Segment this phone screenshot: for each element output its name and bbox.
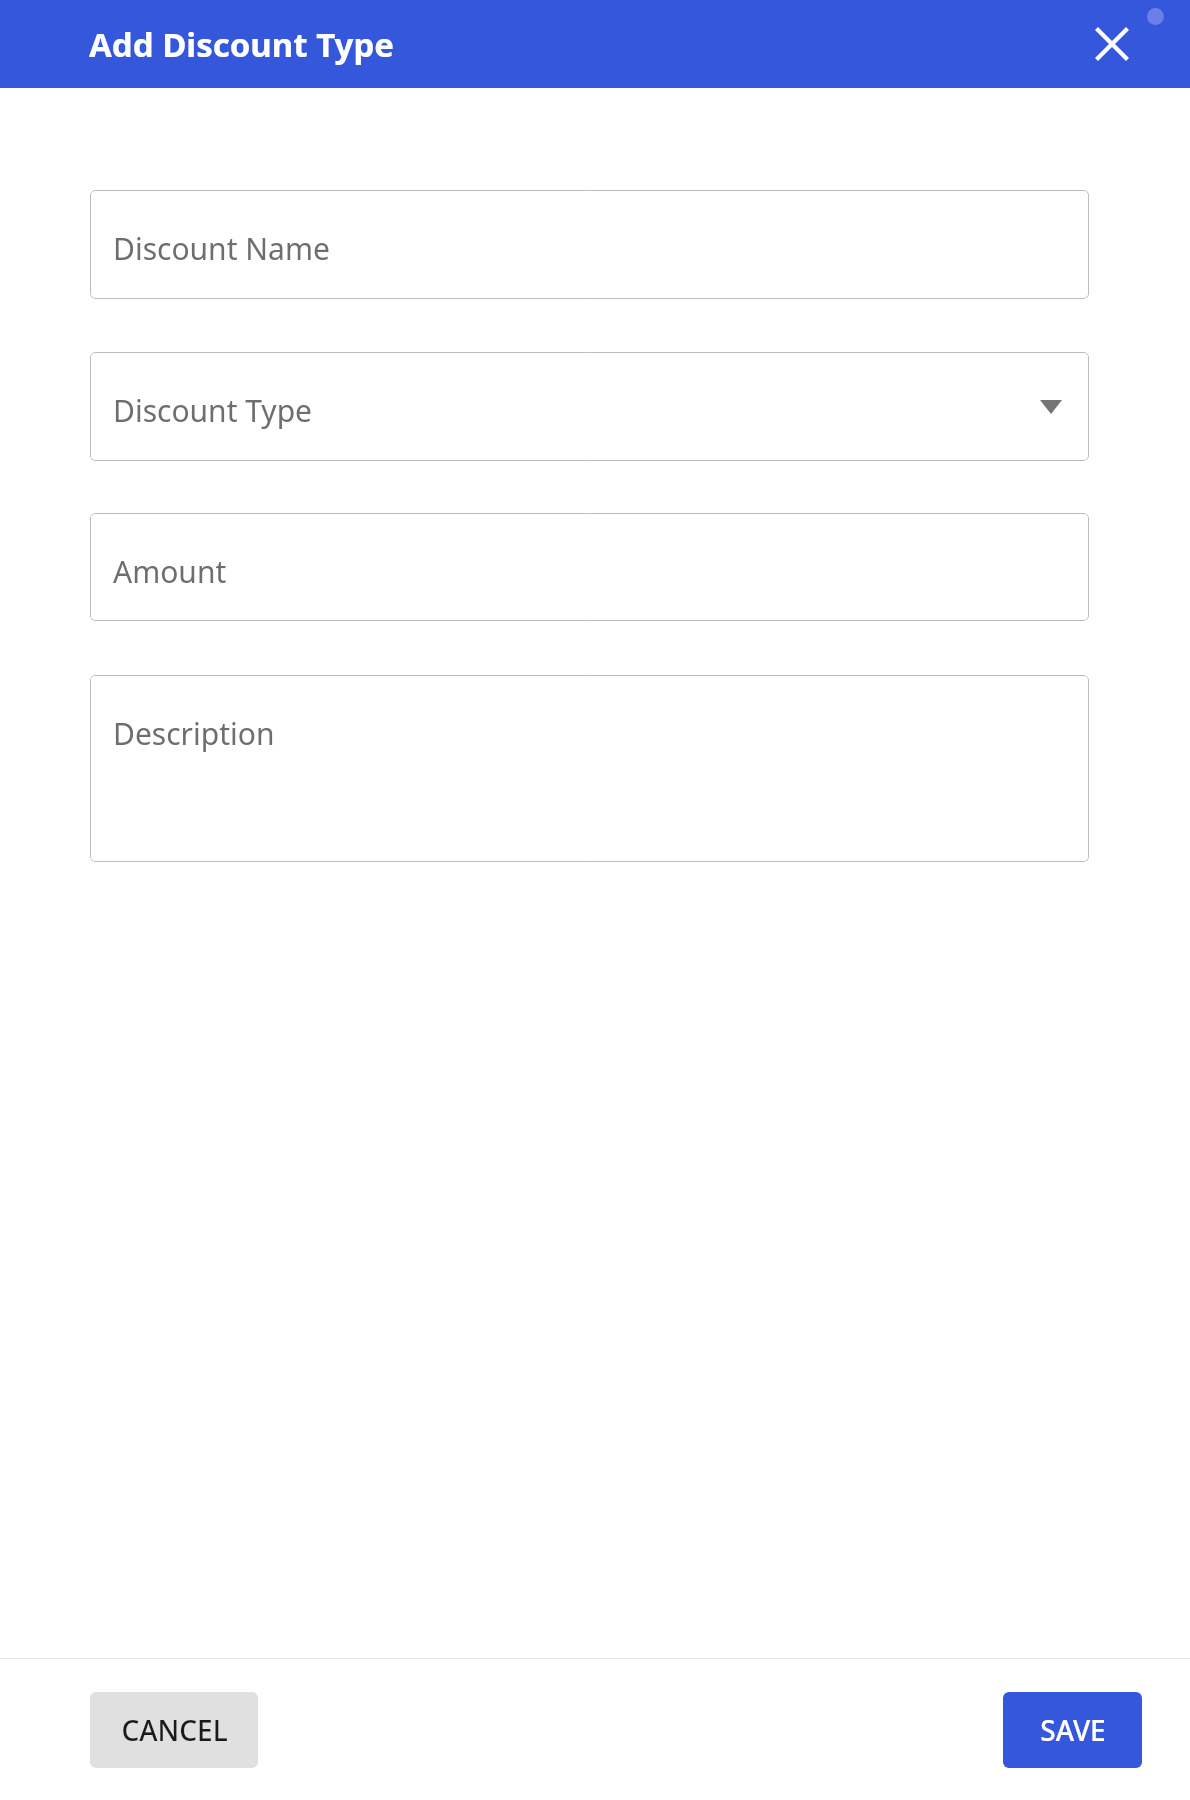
button[interactable]: Description (90, 675, 1089, 862)
button[interactable]: CANCEL (90, 1692, 258, 1768)
button[interactable]: Discount Name (90, 190, 1089, 299)
button[interactable]: Close (1084, 16, 1140, 72)
staticText: SAVE (1040, 1711, 1106, 1749)
button[interactable]: Discount Type (90, 352, 1089, 461)
button[interactable]: Amount (90, 513, 1089, 621)
staticText: Amount (113, 551, 227, 592)
staticText: CANCEL (121, 1711, 228, 1749)
staticText: Description (113, 713, 275, 754)
staticText: Discount Type (113, 390, 313, 431)
staticText: Discount Name (113, 228, 330, 269)
staticText: Add Discount Type (89, 22, 394, 67)
button[interactable]: SAVE (1003, 1692, 1142, 1768)
